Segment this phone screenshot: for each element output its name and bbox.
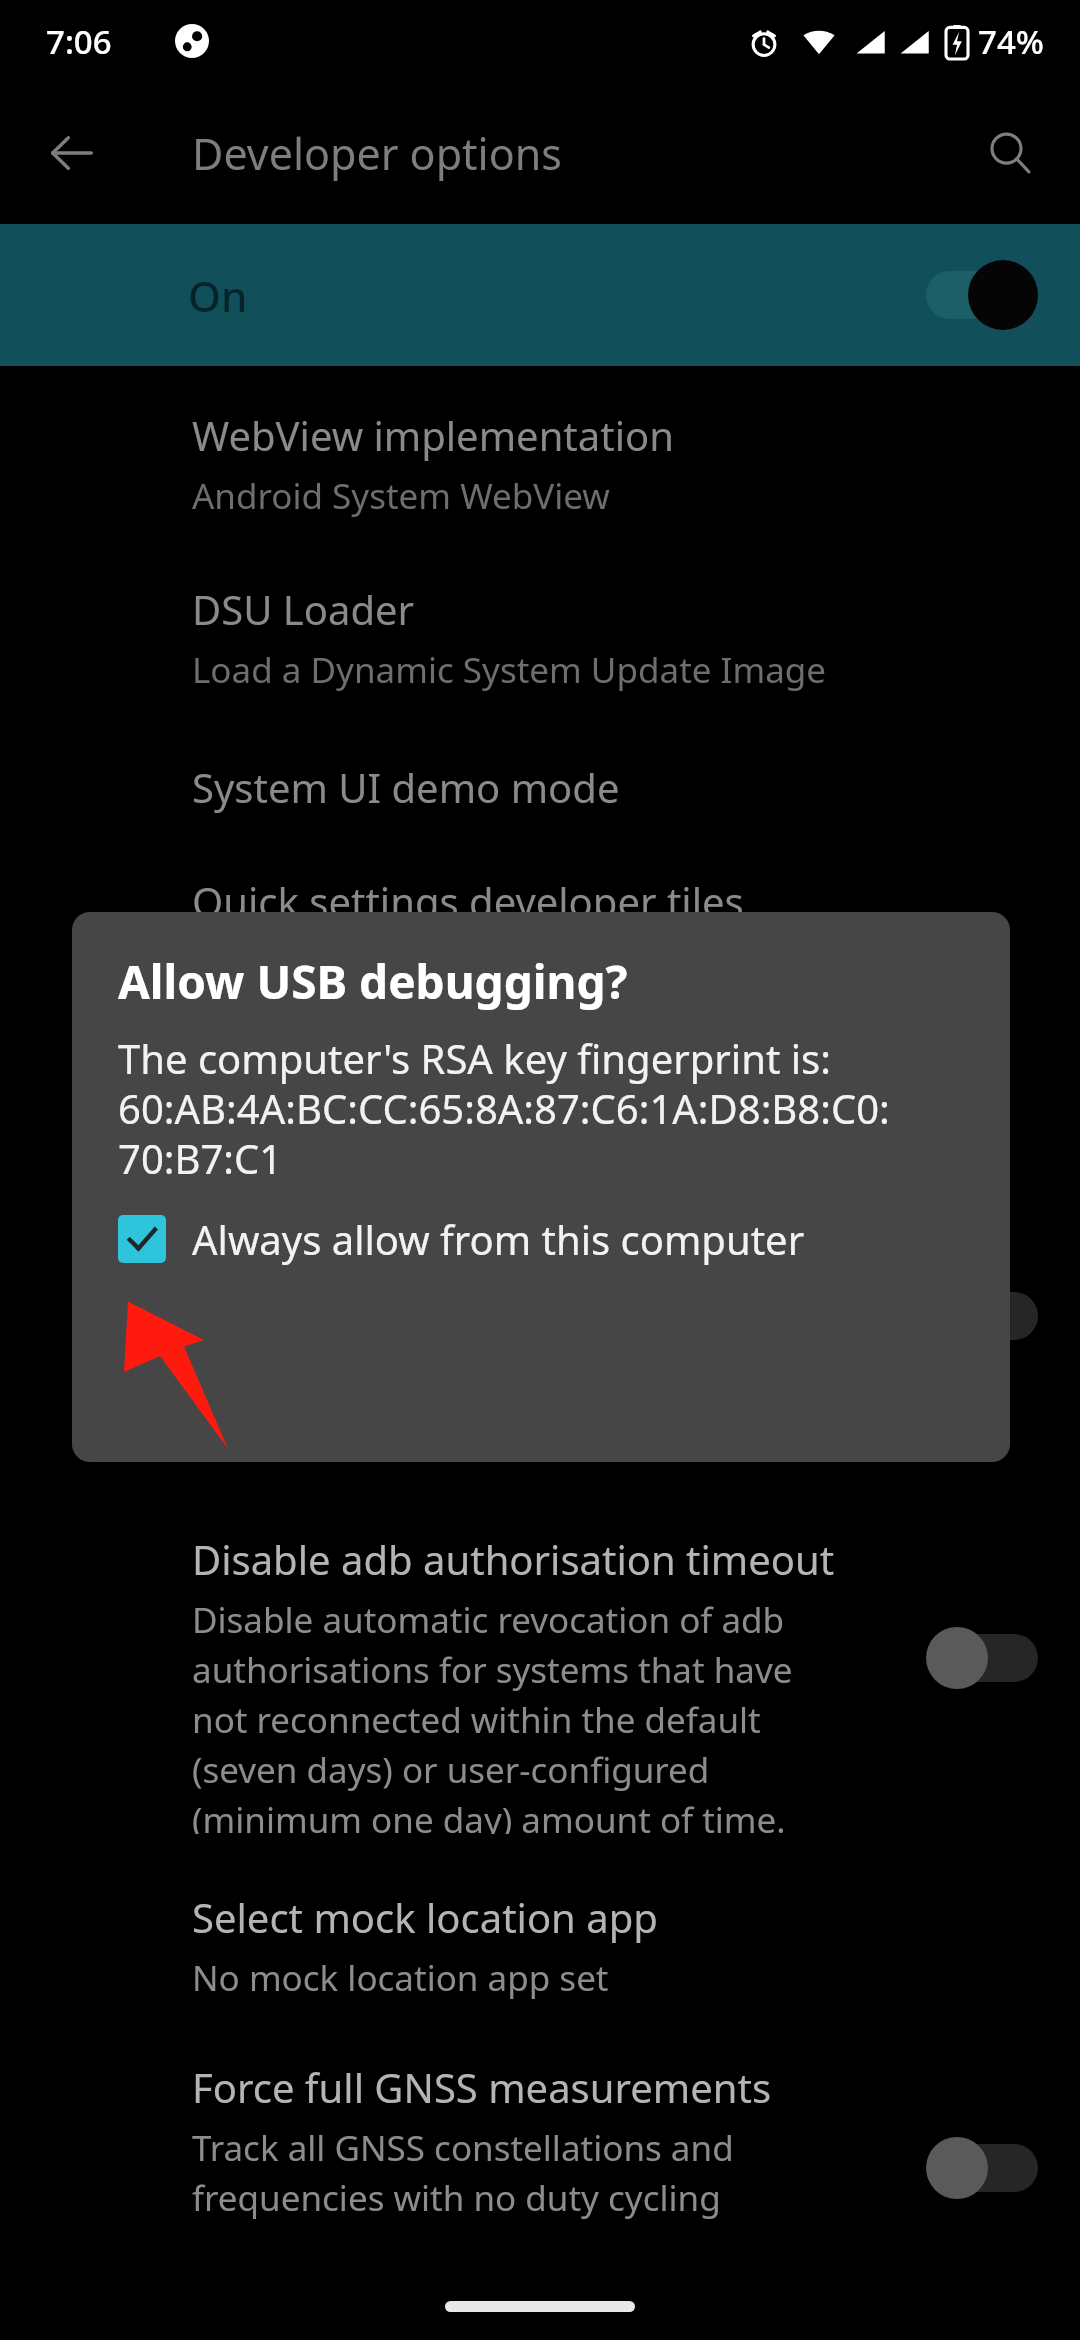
staticText: Disable automatic revocation of adb auth… <box>192 1596 793 1834</box>
staticText: No mock location app set <box>192 1954 609 2002</box>
button[interactable]: DSU Loader <box>0 520 1080 694</box>
button[interactable]: Force full GNSS measurements <box>0 2002 1080 2222</box>
button[interactable]: Toggle <box>926 1622 1038 1694</box>
staticText: Disable adb authorisation timeout <box>192 1532 835 1586</box>
button[interactable]: WebView implementation <box>0 366 1080 520</box>
staticText: Debug mode when Wi-Fi is connected <box>192 1314 630 1414</box>
button[interactable]: Select mock location app <box>0 1834 1080 2002</box>
staticText: Select mock location app <box>192 1890 658 1944</box>
staticText: The computer's RSA key fingerprint is: 6… <box>118 1031 890 1186</box>
button[interactable]: Back <box>24 105 120 201</box>
button[interactable]: Toggle <box>926 1280 1038 1352</box>
staticText: System UI demo mode <box>192 760 620 814</box>
staticText: Quick settings developer tiles <box>192 874 744 928</box>
staticText: DSU Loader <box>192 582 415 636</box>
staticText: Allow USB debugging? <box>118 950 628 1013</box>
button[interactable]: Quick settings developer tiles <box>0 814 1080 928</box>
staticText: Always allow from this computer <box>192 1212 805 1266</box>
button[interactable]: Disable adb authorisation timeout <box>0 1444 1080 1834</box>
button[interactable]: Search <box>962 105 1058 201</box>
staticText: Wireless debugging <box>192 1250 565 1304</box>
staticText: Load a Dynamic System Update Image <box>192 646 827 694</box>
staticText: On <box>188 267 248 324</box>
button[interactable]: Always allow from this computer <box>118 1212 805 1266</box>
staticText: Developer options <box>192 124 562 183</box>
button[interactable]: System UI demo mode <box>0 694 1080 814</box>
staticText: WebView implementation <box>192 408 674 462</box>
button[interactable]: Toggle <box>926 2132 1038 2204</box>
button[interactable]: Wireless debugging <box>0 1244 1080 1444</box>
staticText: Track all GNSS constellations and freque… <box>192 2124 734 2221</box>
staticText: Android System WebView <box>192 472 610 520</box>
staticText: 7:06 <box>46 19 112 64</box>
staticText: 74% <box>978 19 1044 64</box>
staticText: Force full GNSS measurements <box>192 2060 772 2114</box>
button[interactable]: On <box>0 224 1080 366</box>
